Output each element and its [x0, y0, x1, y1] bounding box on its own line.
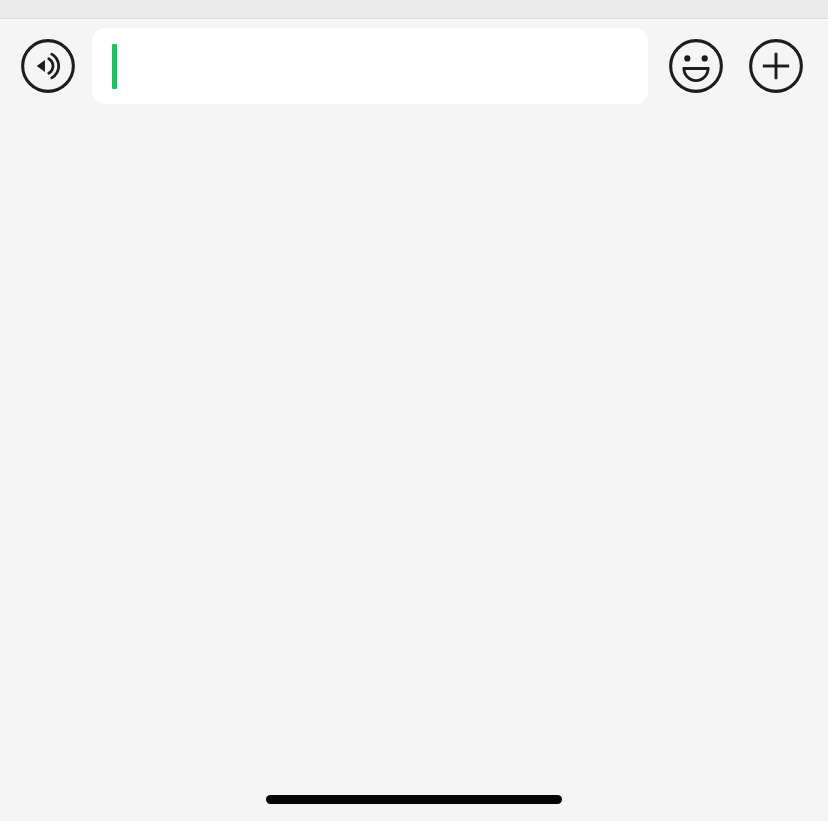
button[interactable]: Message input	[92, 28, 648, 104]
button[interactable]: Voice message	[16, 34, 80, 98]
button[interactable]: Emoji	[664, 34, 728, 98]
button[interactable]: Add attachment	[744, 34, 808, 98]
